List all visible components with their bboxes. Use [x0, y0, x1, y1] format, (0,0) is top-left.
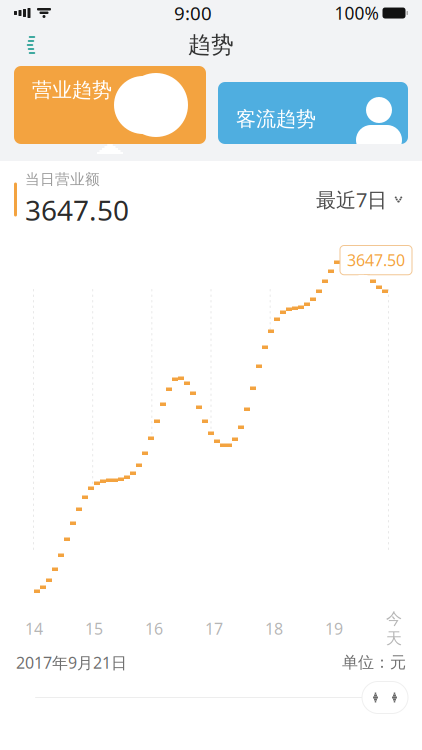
staticText: 客流趋势 — [236, 107, 316, 131]
staticText: ¥ — [142, 73, 169, 137]
staticText: 17 — [205, 618, 223, 639]
staticText: 19 — [325, 618, 343, 639]
button[interactable]: 切换日期范围 — [362, 681, 408, 713]
staticText: 3647.50 — [25, 191, 129, 229]
staticText: 最近7日 — [316, 186, 387, 213]
staticText: 9:00 — [174, 1, 212, 25]
staticText: 营业趋势 — [32, 78, 112, 102]
staticText: 15 — [85, 618, 103, 639]
staticText: 趋势 — [188, 31, 234, 59]
staticText: 100% — [334, 1, 378, 24]
staticText: 单位：元 — [342, 653, 406, 672]
staticText: 3647.50 — [347, 249, 405, 271]
staticText: 当日营业额 — [25, 170, 100, 188]
staticText: 16 — [145, 618, 163, 639]
staticText: 14 — [25, 618, 43, 639]
button[interactable]: 客流趋势 — [218, 82, 408, 144]
staticText: 2017年9月21日 — [16, 652, 127, 673]
staticText: 18 — [265, 618, 283, 639]
button[interactable]: ¥ — [14, 66, 206, 154]
staticText: 今天 — [386, 609, 402, 648]
button[interactable]: 返回 — [8, 25, 52, 65]
button[interactable]: 最近7日 — [312, 178, 408, 221]
